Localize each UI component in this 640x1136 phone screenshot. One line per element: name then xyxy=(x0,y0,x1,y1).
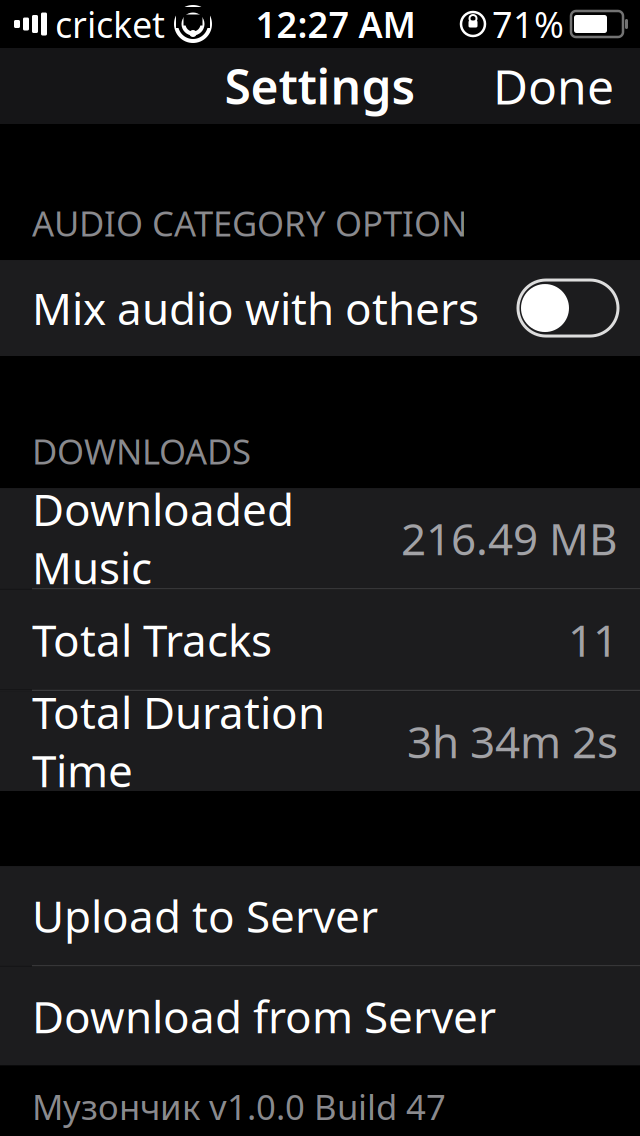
staticText: 12:27 AM xyxy=(255,0,415,48)
staticText: 3h 34m 2s xyxy=(407,712,618,770)
staticText: Done xyxy=(493,54,614,118)
staticText: Музончик v1.0.0 Build 47 xyxy=(32,1084,446,1130)
staticText: Total Tracks xyxy=(32,610,272,669)
button[interactable]: Done xyxy=(479,42,628,130)
staticText: 71% xyxy=(492,0,564,48)
staticText: Upload to Server xyxy=(32,886,378,945)
staticText: Settings xyxy=(224,54,415,118)
staticText: AUDIO CATEGORY OPTION xyxy=(32,200,467,246)
staticText: 216.49 MB xyxy=(401,509,618,567)
staticText: Total Duration Time xyxy=(32,683,325,799)
staticText: DOWNLOADS xyxy=(32,428,251,474)
staticText: 11 xyxy=(568,610,618,669)
button[interactable]: Upload to Server xyxy=(0,866,640,965)
staticText: Download from Server xyxy=(32,987,496,1045)
staticText: Mix audio with others xyxy=(32,279,479,337)
staticText: Downloaded Music xyxy=(32,480,294,596)
staticText: cricket xyxy=(55,0,165,48)
button[interactable]: Download from Server xyxy=(0,967,640,1066)
button[interactable]: Mix audio with others xyxy=(0,260,640,356)
